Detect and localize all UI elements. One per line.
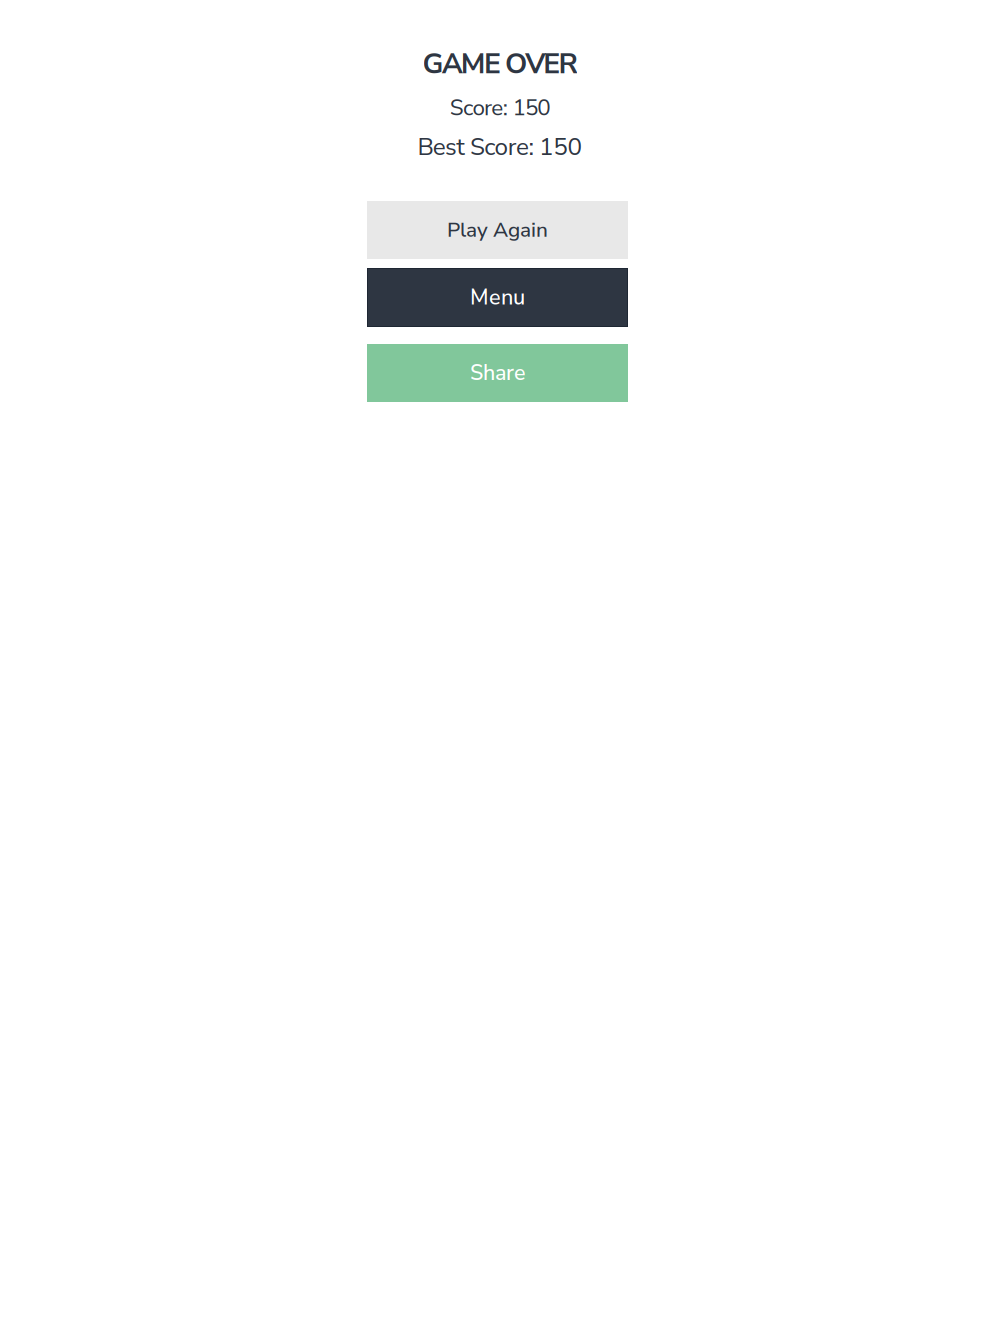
staticText: GAME OVER bbox=[423, 45, 577, 83]
staticText: Share bbox=[470, 358, 525, 388]
button[interactable]: Play Again bbox=[367, 201, 628, 259]
staticText: Menu bbox=[470, 283, 525, 312]
button[interactable]: Menu bbox=[367, 268, 628, 327]
staticText: Best Score: 150 bbox=[417, 130, 583, 164]
staticText: Play Again bbox=[447, 216, 548, 244]
button[interactable]: Share bbox=[367, 344, 628, 402]
staticText: Score: 150 bbox=[450, 93, 550, 123]
